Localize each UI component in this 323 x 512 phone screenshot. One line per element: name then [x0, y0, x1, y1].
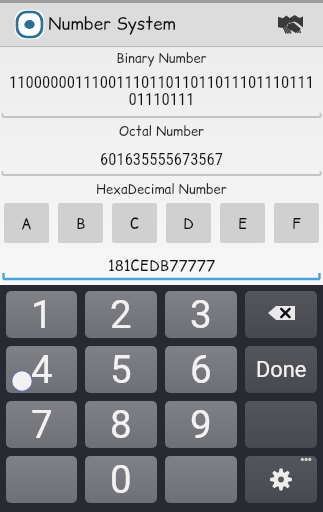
button[interactable]: A: [4, 203, 49, 243]
staticText: 1: [31, 292, 53, 337]
staticText: 3: [190, 292, 212, 337]
staticText: 4: [31, 347, 53, 392]
button[interactable]: Share: [276, 12, 305, 36]
button[interactable]: blank: [165, 456, 237, 503]
staticText: E: [238, 213, 248, 234]
button[interactable]: E: [220, 203, 265, 243]
button[interactable]: Done: [245, 346, 317, 393]
staticText: A: [21, 213, 32, 234]
staticText: 5: [110, 347, 132, 392]
button[interactable]: 6: [165, 346, 237, 393]
staticText: Binary Number: [0, 49, 323, 67]
staticText: 181CEDB77777: [0, 255, 323, 276]
button[interactable]: 3: [165, 291, 237, 338]
button[interactable]: 0: [85, 456, 157, 503]
staticText: 0: [110, 457, 132, 502]
button[interactable]: B: [58, 203, 103, 243]
button[interactable]: D: [166, 203, 211, 243]
button[interactable]: blank: [6, 456, 77, 503]
staticText: 8: [110, 402, 132, 447]
button[interactable]: 5: [85, 346, 157, 393]
staticText: 9: [190, 402, 212, 447]
staticText: D: [183, 213, 194, 234]
staticText: C: [130, 213, 140, 234]
staticText: Number System: [48, 12, 176, 36]
button[interactable]: Settings: [245, 456, 317, 503]
button[interactable]: blank: [245, 401, 317, 448]
staticText: 6: [190, 347, 212, 392]
staticText: Done: [256, 357, 307, 383]
staticText: 7: [31, 402, 53, 447]
button[interactable]: F: [274, 203, 319, 243]
staticText: B: [76, 213, 86, 234]
staticText: 601635555673567: [0, 150, 323, 169]
button[interactable]: C: [112, 203, 157, 243]
staticText: HexaDecimal Number: [0, 180, 323, 198]
button[interactable]: 8: [85, 401, 157, 448]
staticText: F: [292, 213, 302, 234]
staticText: 2: [110, 292, 132, 337]
button[interactable]: 7: [6, 401, 77, 448]
staticText: 1100000011100111011011011011101110111 01…: [0, 73, 323, 109]
button[interactable]: 9: [165, 401, 237, 448]
button[interactable]: 1: [6, 291, 77, 338]
button[interactable]: 2: [85, 291, 157, 338]
staticText: Octal Number: [0, 122, 323, 140]
button[interactable]: App icon: [13, 8, 46, 41]
button[interactable]: 4: [6, 346, 77, 393]
button[interactable]: Backspace: [245, 291, 317, 338]
